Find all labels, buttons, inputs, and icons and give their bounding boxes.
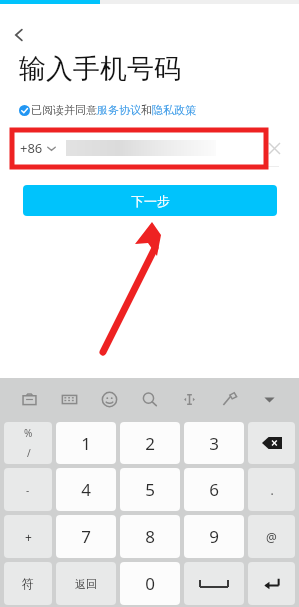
button[interactable]: 8 [120, 515, 180, 558]
staticText: @ [266, 529, 277, 545]
staticText: - [26, 483, 30, 497]
button[interactable]: 5 [120, 468, 180, 511]
button[interactable]: 返回 [56, 562, 116, 605]
staticText: 8 [145, 525, 155, 548]
button[interactable]: @ [248, 515, 295, 558]
staticText: 7 [81, 525, 91, 548]
staticText: 3 [209, 432, 219, 455]
staticText: 2 [145, 432, 155, 455]
button[interactable]: 7 [56, 515, 116, 558]
button[interactable]: Keyboard [49, 378, 89, 420]
button[interactable]: 已阅读并同意 [19, 103, 196, 117]
staticText: 和 [141, 103, 152, 117]
button[interactable] [248, 422, 295, 464]
staticText: 下一步 [131, 193, 170, 209]
staticText: + [25, 529, 32, 545]
staticText: 已阅读并同意 [31, 103, 97, 117]
staticText: 0 [145, 572, 155, 595]
button[interactable]: 4 [56, 468, 116, 511]
button[interactable]: Clipboard [10, 378, 49, 420]
button[interactable]: More [249, 378, 289, 420]
staticText: 隐私政策 [152, 103, 196, 117]
button[interactable]: Search [129, 378, 169, 420]
button[interactable]: Cursor [169, 378, 209, 420]
button[interactable]: 符 [4, 562, 52, 605]
staticText: % [24, 426, 33, 440]
staticText: +86 [20, 139, 43, 157]
button[interactable] [184, 562, 244, 605]
staticText: / [27, 446, 31, 460]
button[interactable]: % [4, 422, 52, 464]
staticText: 9 [209, 525, 219, 548]
staticText: 返回 [75, 577, 97, 591]
staticText: 6 [209, 478, 219, 501]
button[interactable] [248, 562, 295, 605]
button[interactable]: . [248, 468, 295, 511]
button[interactable]: Emoji [89, 378, 129, 420]
button[interactable]: - [4, 468, 52, 511]
button[interactable]: Clear [264, 138, 284, 158]
staticText: 符 [22, 576, 34, 591]
staticText: 输入手机号码 [19, 52, 181, 86]
button[interactable]: 9 [184, 515, 244, 558]
button[interactable]: + [4, 515, 52, 558]
button[interactable]: 0 [120, 562, 180, 605]
staticText: 4 [81, 478, 91, 501]
button[interactable]: 下一步 [23, 185, 277, 216]
staticText: . [270, 482, 274, 498]
button[interactable]: 6 [184, 468, 244, 511]
button[interactable]: Theme [209, 378, 249, 420]
staticText: 5 [145, 478, 155, 501]
staticText: 1 [81, 432, 91, 455]
button[interactable]: 2 [120, 422, 180, 464]
button[interactable]: Back [2, 18, 36, 52]
button[interactable]: +86 [14, 139, 60, 157]
button[interactable]: 3 [184, 422, 244, 464]
staticText: 服务协议 [97, 103, 141, 117]
button[interactable]: 1 [56, 422, 116, 464]
